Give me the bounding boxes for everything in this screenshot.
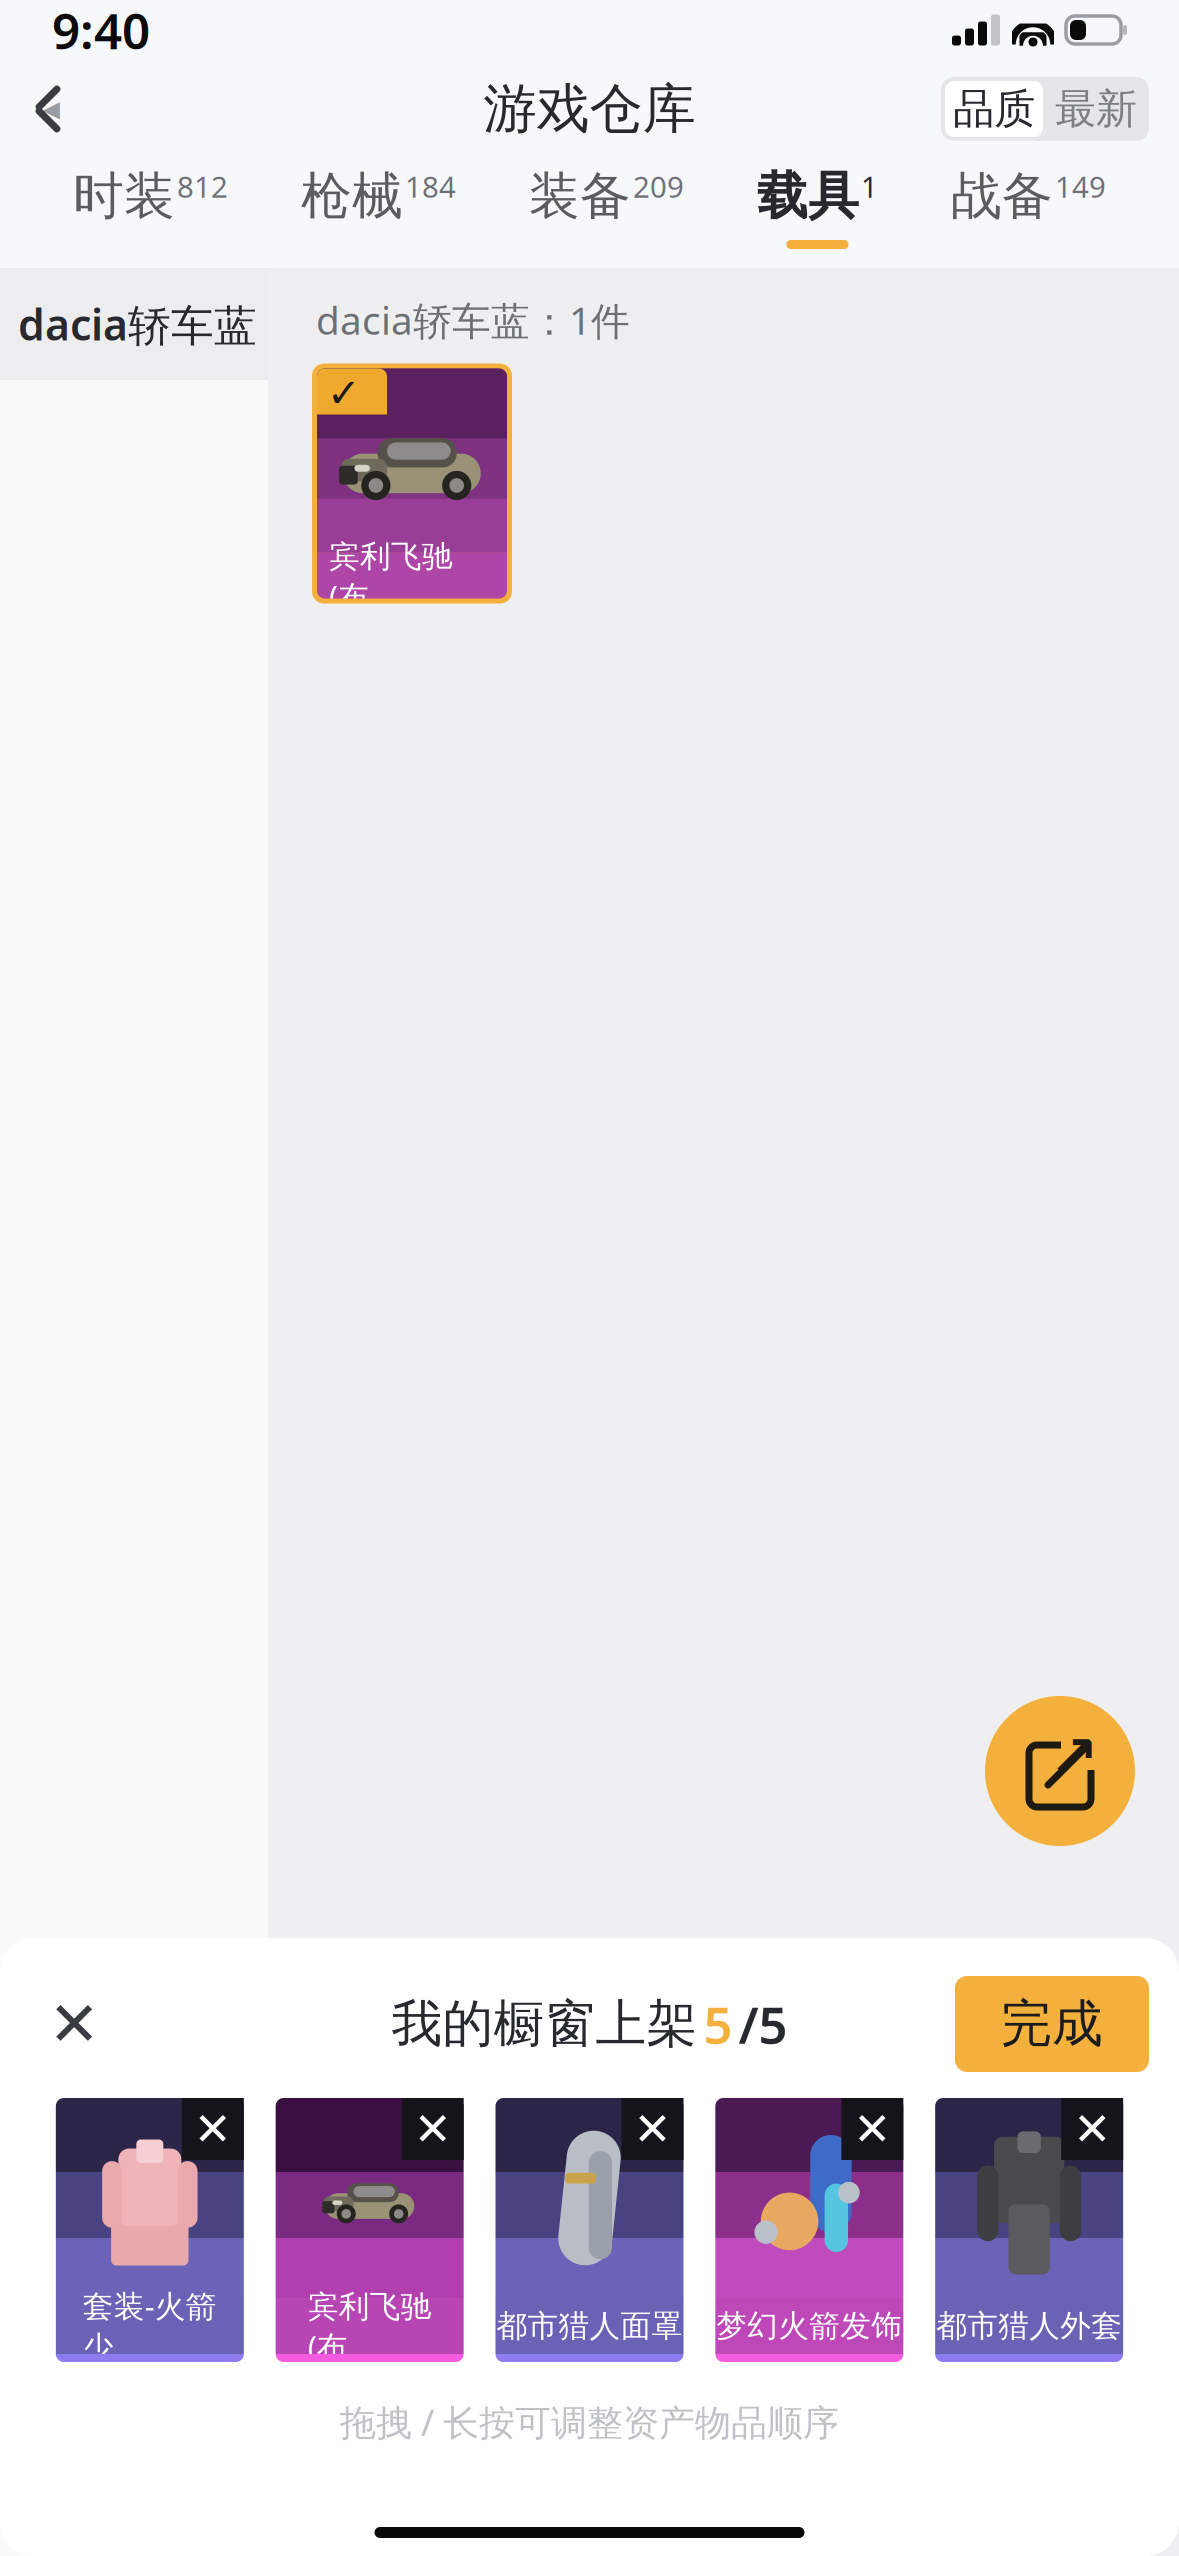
button[interactable]: 品质 bbox=[941, 77, 1047, 141]
button[interactable]: 移除 都市猎人面罩 bbox=[621, 2098, 683, 2160]
staticText: 套装-火箭少… bbox=[83, 2285, 217, 2367]
button[interactable]: 枪械 bbox=[287, 165, 470, 261]
staticText: 游戏仓库 bbox=[483, 76, 695, 142]
staticText: 5 bbox=[703, 1990, 732, 2058]
button[interactable]: 都市猎人外套 bbox=[935, 2098, 1123, 2362]
staticText: 宾利飞驰 (布… bbox=[329, 535, 453, 616]
button[interactable]: 分享 bbox=[985, 1696, 1135, 1846]
staticText: ✓ bbox=[327, 370, 361, 416]
staticText: 品质 bbox=[953, 84, 1035, 134]
staticText: 完成 bbox=[1001, 1993, 1103, 2055]
staticText: ✕ bbox=[1073, 2103, 1111, 2155]
staticText: dacia轿车蓝：1件 bbox=[316, 294, 630, 345]
staticText: ✕ bbox=[853, 2103, 891, 2155]
staticText: 184 bbox=[405, 167, 456, 206]
staticText: ✕ bbox=[414, 2103, 452, 2155]
staticText: 最新 bbox=[1055, 84, 1137, 134]
staticText: 都市猎人面罩 bbox=[496, 2307, 682, 2345]
staticText: 枪械 bbox=[301, 165, 403, 227]
staticText: 149 bbox=[1055, 167, 1106, 206]
button[interactable]: 套装-火箭少… bbox=[56, 2098, 244, 2362]
button[interactable]: 返回 bbox=[0, 64, 96, 154]
staticText: 载具 bbox=[757, 165, 859, 227]
staticText: 时装 bbox=[73, 165, 175, 227]
staticText: /5 bbox=[738, 1990, 787, 2058]
button[interactable]: 时装 bbox=[59, 165, 242, 261]
button[interactable]: 战备 bbox=[937, 165, 1120, 261]
staticText: ✕ bbox=[194, 2103, 232, 2155]
staticText: 梦幻火箭发饰 bbox=[716, 2307, 902, 2345]
button[interactable]: 移除 宾利飞驰 (布… bbox=[402, 2098, 464, 2160]
button[interactable]: 移除 套装-火箭少… bbox=[182, 2098, 244, 2160]
button[interactable]: 完成 bbox=[955, 1976, 1149, 2072]
staticText: 都市猎人外套 bbox=[936, 2307, 1122, 2345]
staticText: 装备 bbox=[529, 165, 631, 227]
staticText: 812 bbox=[177, 167, 228, 206]
button[interactable]: 梦幻火箭发饰 bbox=[715, 2098, 903, 2362]
staticText: dacia轿车蓝 bbox=[18, 296, 257, 352]
button[interactable]: 宾利飞驰 (布… bbox=[312, 363, 512, 603]
staticText: 宾利飞驰 (布… bbox=[308, 2285, 432, 2367]
staticText: 9:40 bbox=[52, 0, 150, 63]
button[interactable]: dacia轿车蓝 bbox=[0, 268, 268, 380]
staticText: 209 bbox=[633, 167, 684, 206]
button[interactable]: 最新 bbox=[1047, 77, 1149, 141]
staticText: 1 bbox=[861, 167, 878, 206]
button[interactable]: 宾利飞驰 (布… bbox=[276, 2098, 464, 2362]
button[interactable]: 装备 bbox=[515, 165, 698, 261]
staticText: 我的橱窗上架 bbox=[391, 1993, 697, 2055]
staticText: ✕ bbox=[633, 2103, 671, 2155]
button[interactable]: 移除 都市猎人外套 bbox=[1061, 2098, 1123, 2160]
staticText: ◀ bbox=[42, 96, 59, 122]
staticText: ↗ bbox=[1049, 1724, 1098, 1790]
staticText: 战备 bbox=[951, 165, 1053, 227]
button[interactable]: 关闭 bbox=[26, 1976, 122, 2072]
button[interactable]: 移除 梦幻火箭发饰 bbox=[841, 2098, 903, 2160]
button[interactable]: 载具 bbox=[743, 165, 892, 261]
staticText: 拖拽 / 长按可调整资产物品顺序 bbox=[340, 2398, 839, 2446]
button[interactable]: 都市猎人面罩 bbox=[495, 2098, 683, 2362]
staticText: ✕ bbox=[48, 1989, 99, 2059]
